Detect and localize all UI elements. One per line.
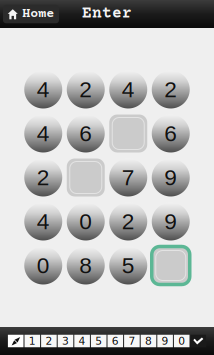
staticText: 1: [29, 335, 36, 347]
staticText: 0: [37, 253, 50, 278]
staticText: 4: [37, 77, 50, 102]
staticText: 3: [62, 335, 69, 347]
staticText: 2: [79, 77, 92, 102]
staticText: Home: [22, 6, 54, 21]
button[interactable]: 2: [41, 335, 57, 347]
staticText: 2: [45, 335, 52, 347]
button[interactable]: 2: [67, 70, 105, 108]
button[interactable]: Empty slot: [109, 114, 147, 152]
staticText: 2: [164, 77, 177, 102]
staticText: 9: [162, 335, 169, 347]
staticText: 7: [128, 335, 135, 347]
button[interactable]: 4: [74, 335, 90, 347]
button[interactable]: 6: [152, 114, 190, 152]
staticText: 8: [79, 253, 92, 278]
staticText: 5: [122, 253, 135, 278]
button[interactable]: 5: [91, 335, 106, 347]
staticText: 0: [79, 209, 92, 234]
button[interactable]: Empty slot: [67, 158, 105, 196]
staticText: 9: [164, 165, 177, 190]
button[interactable]: 7: [124, 335, 140, 347]
button[interactable]: 5: [109, 246, 147, 284]
button[interactable]: 2: [24, 158, 62, 196]
button[interactable]: 4: [24, 202, 62, 240]
button[interactable]: 2: [152, 70, 190, 108]
button[interactable]: 4: [24, 114, 62, 152]
button[interactable]: 1: [24, 335, 40, 347]
button[interactable]: 6: [107, 335, 123, 347]
staticText: 4: [122, 77, 135, 102]
button[interactable]: 6: [67, 114, 105, 152]
staticText: Enter: [82, 5, 132, 23]
button[interactable]: 0: [174, 335, 189, 347]
staticText: 6: [79, 121, 92, 146]
staticText: 6: [112, 335, 119, 347]
staticText: 8: [145, 335, 152, 347]
staticText: 4: [79, 335, 86, 347]
button[interactable]: 9: [152, 202, 190, 240]
staticText: 2: [122, 209, 135, 234]
staticText: 6: [164, 121, 177, 146]
button[interactable]: 4: [24, 70, 62, 108]
staticText: 5: [95, 335, 102, 347]
button[interactable]: Home: [3, 5, 59, 23]
button[interactable]: 7: [109, 158, 147, 196]
button[interactable]: 4: [109, 70, 147, 108]
button[interactable]: Erase: [8, 335, 23, 347]
staticText: 4: [37, 121, 50, 146]
staticText: 7: [122, 165, 135, 190]
staticText: 4: [37, 209, 50, 234]
staticText: 9: [164, 209, 177, 234]
button[interactable]: Confirm: [190, 335, 206, 347]
button[interactable]: 8: [141, 335, 156, 347]
staticText: 2: [37, 165, 50, 190]
button[interactable]: 8: [67, 246, 105, 284]
button[interactable]: 0: [67, 202, 105, 240]
button[interactable]: 3: [58, 335, 73, 347]
button[interactable]: 9: [152, 158, 190, 196]
button[interactable]: Selected slot: [152, 246, 190, 284]
button[interactable]: 0: [24, 246, 62, 284]
button[interactable]: 9: [157, 335, 173, 347]
button[interactable]: 2: [109, 202, 147, 240]
staticText: 0: [178, 335, 185, 347]
